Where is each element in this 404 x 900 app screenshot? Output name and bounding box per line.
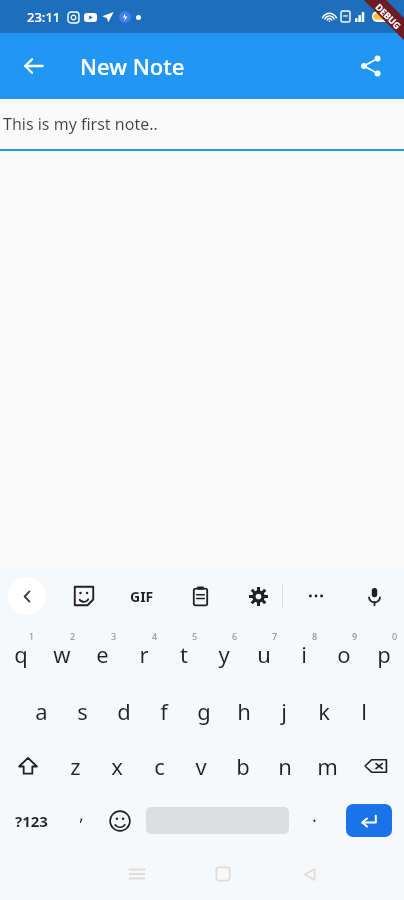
staticText: 5: [192, 630, 198, 642]
staticText: ?123: [15, 811, 48, 831]
button[interactable]: [140, 793, 295, 848]
staticText: f: [160, 696, 168, 726]
button[interactable]: Home: [180, 848, 266, 900]
button[interactable]: v: [180, 738, 222, 793]
staticText: 6: [232, 630, 238, 642]
staticText: 8: [312, 630, 318, 642]
button[interactable]: This is my first note..: [0, 99, 404, 151]
staticText: GIF: [130, 587, 154, 606]
staticText: 23:11: [27, 8, 61, 26]
staticText: g: [197, 696, 211, 726]
button[interactable]: .: [295, 793, 333, 848]
button[interactable]: z: [55, 738, 96, 793]
button[interactable]: t: [164, 625, 204, 683]
button[interactable]: Emoji: [100, 793, 140, 848]
staticText: p: [377, 639, 391, 669]
button[interactable]: Backspace: [348, 738, 404, 793]
staticText: o: [337, 639, 351, 669]
staticText: .: [312, 803, 317, 828]
button[interactable]: ,: [63, 793, 100, 848]
button[interactable]: e: [82, 625, 123, 683]
staticText: r: [139, 639, 149, 669]
button[interactable]: l: [344, 683, 384, 738]
button[interactable]: f: [144, 683, 184, 738]
button[interactable]: m: [306, 738, 348, 793]
staticText: 9: [352, 630, 358, 642]
staticText: 0: [392, 630, 398, 642]
button[interactable]: Recents: [94, 848, 180, 900]
staticText: v: [195, 751, 207, 781]
staticText: n: [278, 751, 292, 781]
button[interactable]: d: [103, 683, 144, 738]
staticText: DEBUG: [373, 1, 404, 31]
staticText: h: [237, 696, 251, 726]
button[interactable]: x: [96, 738, 138, 793]
button[interactable]: Share: [347, 42, 395, 90]
staticText: e: [96, 639, 109, 669]
button[interactable]: Stickers: [64, 576, 104, 616]
staticText: m: [317, 751, 338, 781]
button[interactable]: w: [41, 625, 82, 683]
button[interactable]: j: [264, 683, 304, 738]
staticText: k: [318, 696, 330, 726]
button[interactable]: Voice input: [354, 576, 394, 616]
button[interactable]: o: [324, 625, 364, 683]
button[interactable]: Enter: [333, 793, 404, 848]
button[interactable]: u: [244, 625, 284, 683]
staticText: i: [301, 639, 307, 669]
button[interactable]: b: [222, 738, 264, 793]
staticText: l: [361, 696, 367, 726]
staticText: b: [236, 751, 250, 781]
staticText: y: [218, 639, 230, 669]
staticText: x: [111, 751, 123, 781]
staticText: 1: [29, 630, 35, 642]
staticText: w: [53, 639, 71, 669]
button[interactable]: a: [21, 683, 62, 738]
button[interactable]: GIF: [122, 576, 162, 616]
button[interactable]: Expand toolbar: [8, 577, 46, 615]
button[interactable]: h: [224, 683, 264, 738]
button[interactable]: More options: [296, 576, 336, 616]
staticText: j: [281, 696, 287, 726]
staticText: c: [154, 751, 165, 781]
staticText: q: [14, 639, 28, 669]
button[interactable]: k: [304, 683, 344, 738]
button[interactable]: Clipboard: [180, 576, 220, 616]
staticText: t: [180, 639, 188, 669]
staticText: New Note: [80, 51, 185, 81]
button[interactable]: p: [364, 625, 404, 683]
button[interactable]: Settings: [238, 576, 278, 616]
button[interactable]: r: [123, 625, 164, 683]
staticText: 4: [152, 630, 158, 642]
staticText: d: [117, 696, 131, 726]
button[interactable]: s: [62, 683, 103, 738]
button[interactable]: q: [0, 625, 41, 683]
staticText: z: [70, 751, 81, 781]
staticText: a: [35, 696, 48, 726]
staticText: u: [257, 639, 271, 669]
button[interactable]: ?123: [0, 793, 63, 848]
button[interactable]: Back: [10, 42, 58, 90]
button[interactable]: n: [264, 738, 306, 793]
button[interactable]: g: [184, 683, 224, 738]
staticText: s: [77, 696, 88, 726]
staticText: 2: [70, 630, 76, 642]
button[interactable]: y: [204, 625, 244, 683]
button[interactable]: Shift: [0, 738, 55, 793]
staticText: ,: [79, 802, 84, 827]
staticText: 7: [272, 630, 278, 642]
staticText: This is my first note..: [3, 113, 158, 135]
button[interactable]: c: [138, 738, 180, 793]
staticText: 3: [111, 630, 117, 642]
button[interactable]: i: [284, 625, 324, 683]
